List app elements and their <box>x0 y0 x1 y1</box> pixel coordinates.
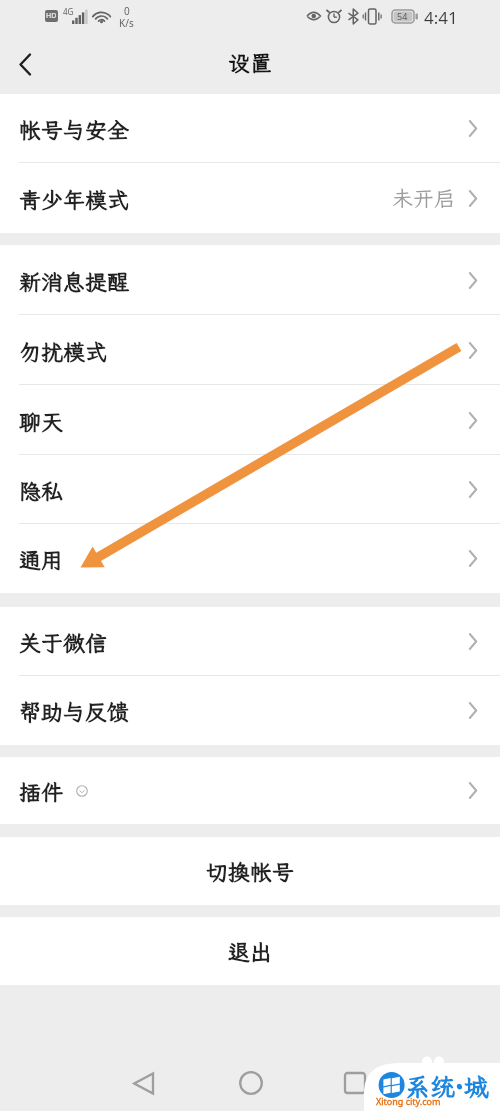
staticText: 切换帐号 <box>206 857 295 886</box>
button[interactable]: 插件 <box>0 757 500 824</box>
staticText: 54 <box>397 10 408 22</box>
button[interactable]: 聊天 <box>0 385 500 455</box>
staticText: 设置 <box>228 48 273 77</box>
staticText: 隐私 <box>19 476 64 505</box>
button[interactable]: 帮助与反馈 <box>0 676 500 745</box>
staticText: 关于微信 <box>19 628 108 657</box>
button[interactable]: Back <box>115 1055 171 1111</box>
staticText: 未开启 <box>392 184 455 212</box>
staticText: 青少年模式 <box>19 185 130 214</box>
button[interactable]: 退出 <box>0 917 500 985</box>
button[interactable]: 青少年模式 <box>0 163 500 233</box>
button[interactable]: 关于微信 <box>0 607 500 676</box>
button[interactable]: 新消息提醒 <box>0 245 500 315</box>
button[interactable]: Back <box>6 45 44 83</box>
button[interactable]: 隐私 <box>0 455 500 524</box>
button[interactable]: 切换帐号 <box>0 837 500 905</box>
button[interactable]: Home <box>223 1055 279 1111</box>
staticText: 退出 <box>228 937 273 966</box>
staticText: 4:41 <box>424 6 458 29</box>
button[interactable]: Recent apps <box>327 1055 383 1111</box>
staticText: 通用 <box>19 545 64 574</box>
button[interactable]: 帐号与安全 <box>0 94 500 163</box>
staticText: 帮助与反馈 <box>19 697 130 726</box>
staticText: 插件 <box>19 777 64 806</box>
staticText: 4G <box>63 6 74 17</box>
staticText: 新消息提醒 <box>19 267 130 296</box>
staticText: Xitong city.com <box>376 1095 441 1107</box>
staticText: 0 <box>124 4 130 18</box>
staticText: K/s <box>119 16 134 30</box>
staticText: 聊天 <box>19 407 64 436</box>
staticText: 系统·城 <box>405 1070 489 1103</box>
button[interactable]: 通用 <box>0 524 500 593</box>
staticText: 勿扰模式 <box>19 337 108 366</box>
button[interactable]: 勿扰模式 <box>0 315 500 385</box>
staticText: HD <box>46 11 57 21</box>
staticText: 帐号与安全 <box>19 115 130 144</box>
